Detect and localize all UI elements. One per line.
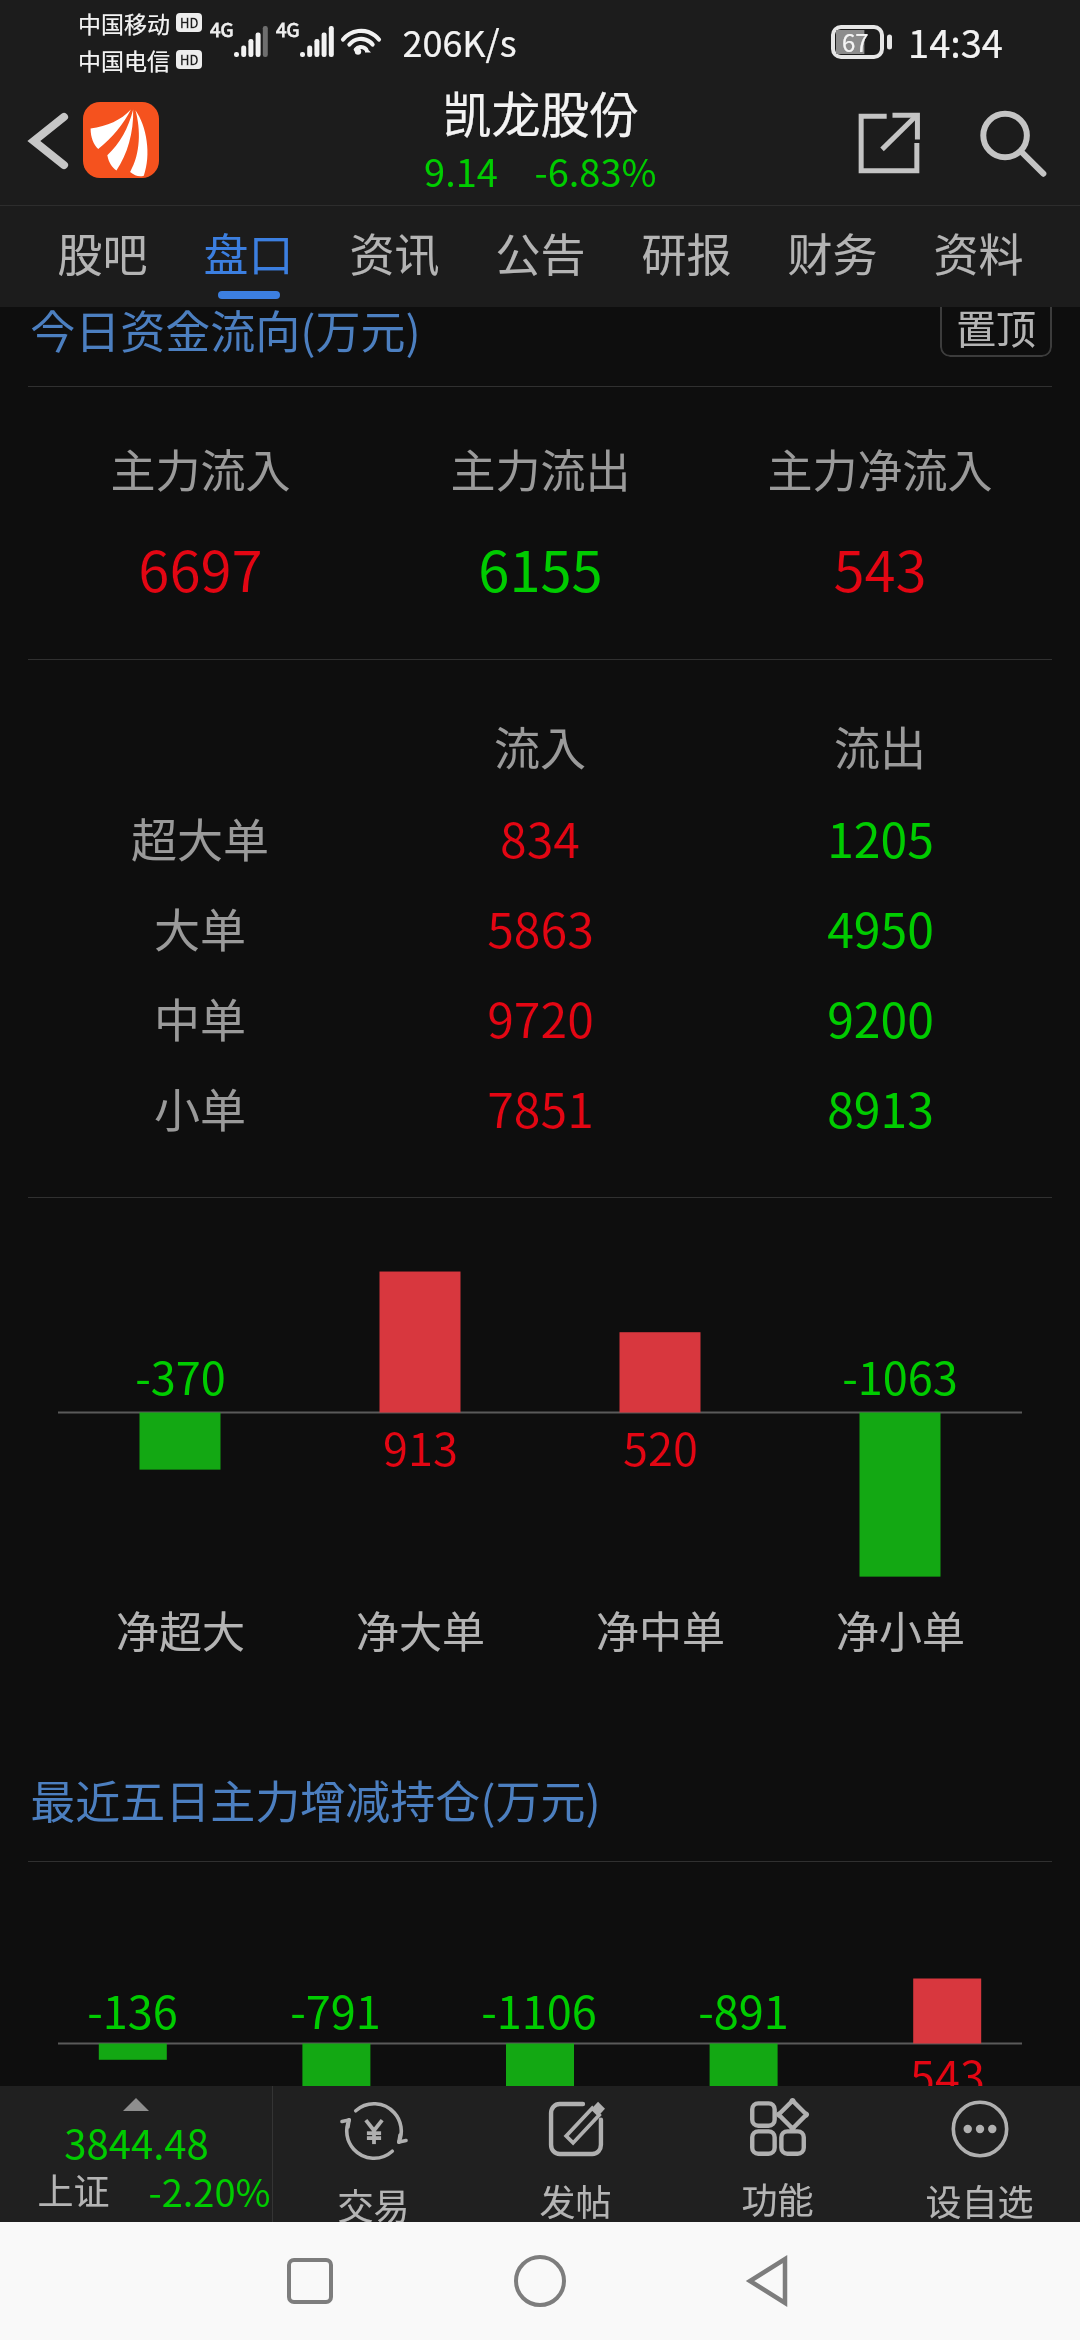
staticText: 股吧 <box>57 220 148 285</box>
button[interactable]: App home <box>83 102 159 178</box>
staticText: 财务 <box>787 220 878 285</box>
staticText: 中单 <box>154 984 246 1051</box>
button[interactable]: 资讯 <box>321 206 467 307</box>
staticText: 543 <box>910 2042 985 2107</box>
staticText: 发帖 <box>539 2174 612 2222</box>
staticText: -1106 <box>481 1977 597 2042</box>
staticText: 4G <box>210 15 234 43</box>
staticText: 流出 <box>834 712 926 772</box>
staticText: 913 <box>383 1414 458 1479</box>
staticText: 3844.48 <box>64 2113 209 2171</box>
staticText: -791 <box>290 1977 381 2042</box>
staticText: 6697 <box>138 527 263 608</box>
staticText: 功能 <box>741 2172 814 2222</box>
button[interactable]: 公告 <box>467 206 613 307</box>
staticText: 超大单 <box>131 804 269 871</box>
staticText: 公告 <box>495 220 586 285</box>
staticText: 小单 <box>154 1074 246 1141</box>
staticText: 最近五日主力增减持仓(万元) <box>30 1767 601 1832</box>
staticText: 9200 <box>827 982 934 1052</box>
staticText: 资讯 <box>349 220 440 285</box>
button[interactable]: Back <box>0 82 88 206</box>
staticText: 研报 <box>641 220 732 285</box>
button[interactable]: Home <box>425 2222 655 2340</box>
staticText: 67 <box>842 24 869 58</box>
staticText: 中国移动 <box>78 6 170 39</box>
button[interactable]: 股吧 <box>29 206 175 307</box>
staticText: 1205 <box>827 802 934 872</box>
staticText: -6.83% <box>534 143 657 196</box>
button[interactable]: Back <box>655 2222 885 2340</box>
staticText: 凯龙股份 <box>442 76 639 147</box>
staticText: 净超大 <box>116 1598 245 1660</box>
staticText: 净中单 <box>596 1598 725 1660</box>
button[interactable]: 发帖 <box>474 2086 676 2222</box>
button[interactable]: 财务 <box>759 206 905 307</box>
staticText: 520 <box>623 1414 698 1479</box>
staticText: 834 <box>500 802 580 872</box>
button[interactable]: Search <box>965 82 1065 206</box>
staticText: 4G <box>276 15 300 43</box>
staticText: 主力净流入 <box>767 436 993 501</box>
staticText: 7851 <box>487 1072 594 1142</box>
staticText: -1063 <box>842 1343 958 1408</box>
staticText: 资料 <box>933 220 1024 285</box>
staticText: 4950 <box>827 892 934 962</box>
button[interactable]: Share <box>829 82 965 206</box>
button[interactable]: 交易 <box>273 2086 474 2222</box>
staticText: 净小单 <box>836 1598 965 1660</box>
staticText: 206K/s <box>402 15 517 67</box>
staticText: 流入 <box>494 712 586 772</box>
staticText: 543 <box>833 527 927 608</box>
staticText: 主力流入 <box>110 436 291 501</box>
staticText: HD <box>180 13 199 32</box>
staticText: 8913 <box>827 1072 934 1142</box>
staticText: 净大单 <box>356 1598 485 1660</box>
staticText: 9.14 <box>424 143 498 196</box>
staticText: -2.20% <box>148 2163 271 2214</box>
staticText: 主力流出 <box>450 436 631 501</box>
staticText: 14:34 <box>908 14 1003 69</box>
staticText: 大单 <box>154 894 246 961</box>
button[interactable]: 置顶 <box>940 307 1052 357</box>
staticText: 交易 <box>337 2178 410 2222</box>
button[interactable]: 研报 <box>613 206 759 307</box>
button[interactable]: Recents <box>195 2222 425 2340</box>
button[interactable]: 资料 <box>905 206 1051 307</box>
staticText: 6155 <box>478 527 603 608</box>
button[interactable]: 3844.48 <box>0 2086 272 2222</box>
staticText: -370 <box>135 1343 226 1408</box>
staticText: 5863 <box>487 892 594 962</box>
staticText: 设自选 <box>925 2174 1034 2222</box>
staticText: 9720 <box>487 982 594 1052</box>
staticText: -136 <box>87 1977 178 2042</box>
button[interactable]: 盘口 <box>175 206 321 307</box>
staticText: 盘口 <box>203 220 294 285</box>
staticText: 中国电信 <box>78 43 170 76</box>
staticText: 置顶 <box>956 307 1036 356</box>
staticText: 今日资金流向(万元) <box>30 307 421 362</box>
staticText: -891 <box>698 1977 789 2042</box>
staticText: 上证 <box>37 2163 110 2214</box>
staticText: HD <box>180 50 199 69</box>
button[interactable]: 功能 <box>676 2086 878 2222</box>
button[interactable]: 设自选 <box>878 2086 1080 2222</box>
